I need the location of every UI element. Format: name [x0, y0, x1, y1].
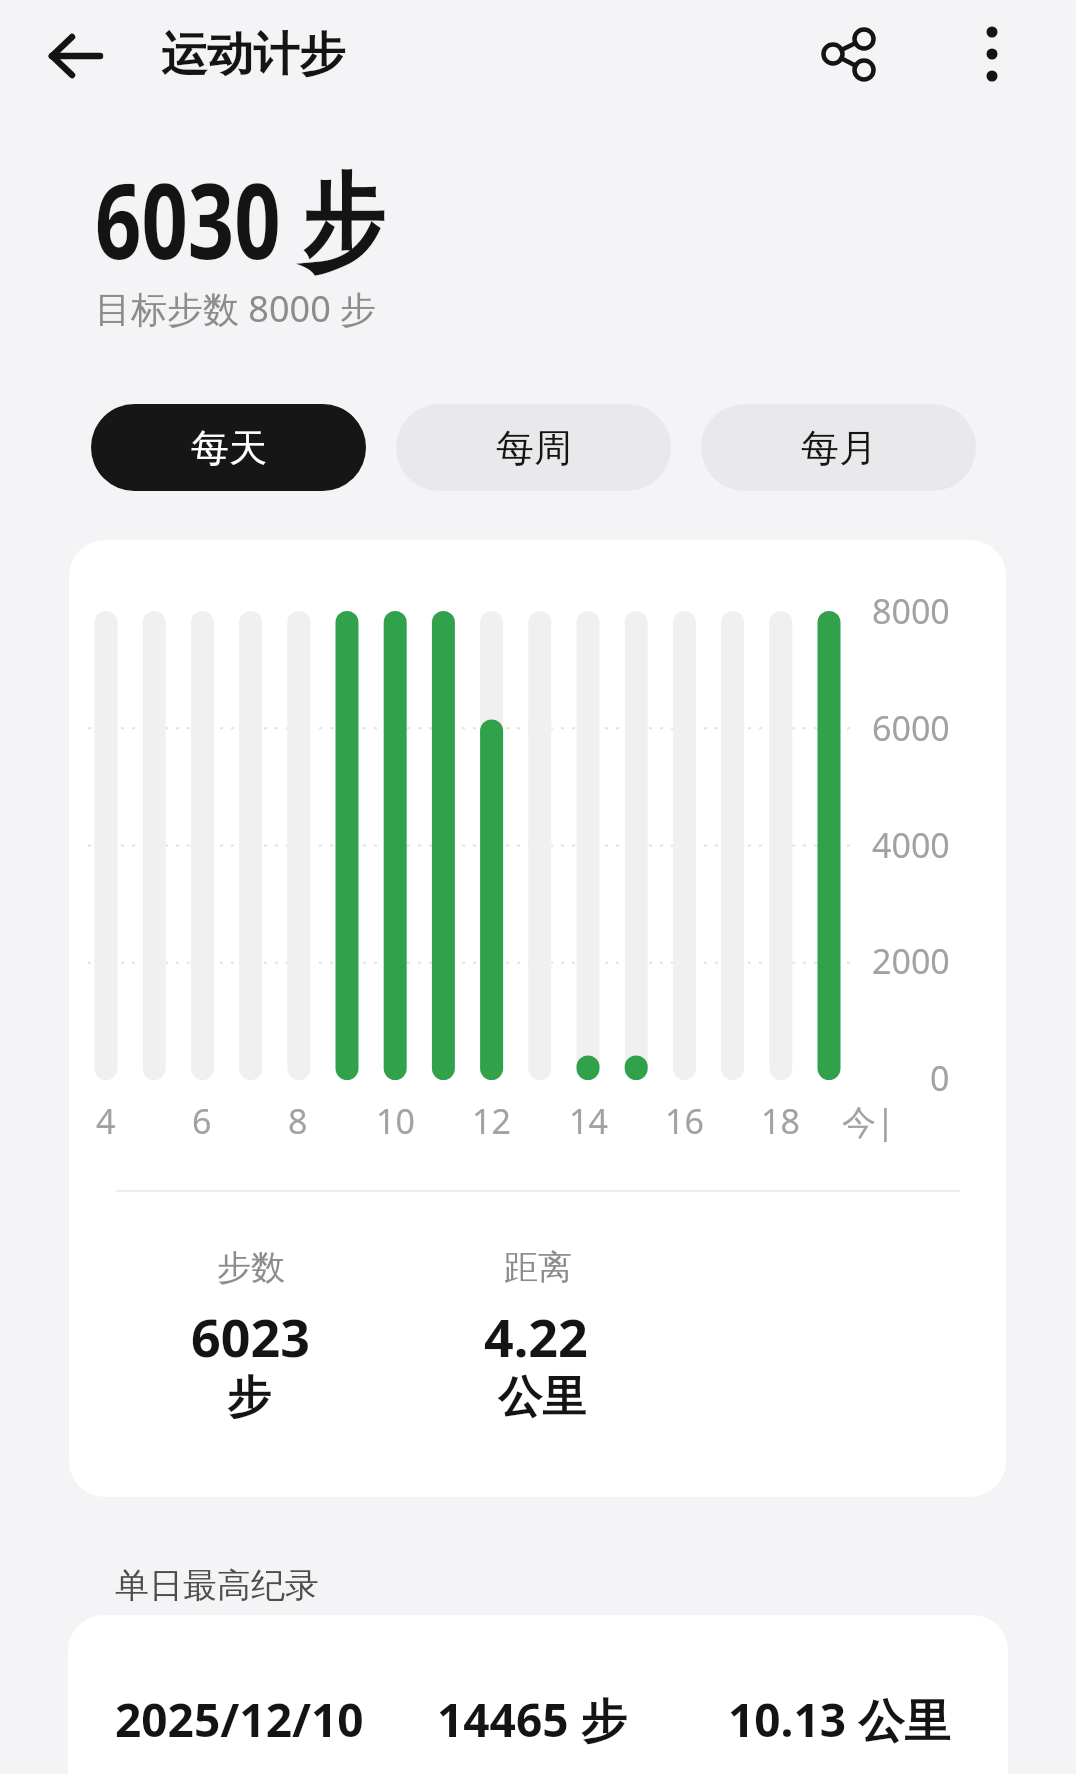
staticText: 12 — [472, 1098, 511, 1144]
staticText: 18 — [761, 1098, 800, 1144]
staticText: 6 — [192, 1098, 212, 1144]
button[interactable]: 每周 — [396, 404, 671, 491]
button[interactable] — [810, 20, 886, 88]
staticText: 4.22 — [484, 1301, 588, 1371]
button[interactable]: 2025/12/10 — [68, 1615, 1008, 1774]
staticText: 10.13 公里 — [728, 1688, 951, 1751]
staticText: 每周 — [496, 424, 572, 472]
staticText: 4000 — [872, 822, 950, 868]
staticText: 6023 — [191, 1301, 310, 1371]
staticText: 6000 — [872, 705, 950, 751]
staticText: 单日最高纪录 — [115, 1564, 319, 1607]
button[interactable]: 每天 — [91, 404, 366, 491]
staticText: 0 — [930, 1055, 950, 1101]
staticText: 8 — [288, 1098, 308, 1144]
staticText: 10 — [376, 1098, 415, 1144]
staticText: 运动计步 — [161, 26, 345, 84]
staticText: 4 — [96, 1098, 116, 1144]
staticText: 14465 步 — [437, 1688, 627, 1751]
staticText: 每天 — [191, 424, 267, 472]
staticText: 步数 — [217, 1246, 285, 1289]
staticText: 距离 — [504, 1246, 572, 1289]
staticText: 2000 — [872, 938, 950, 984]
staticText: 今| — [842, 1098, 895, 1144]
staticText: 公里 — [498, 1370, 586, 1425]
staticText: 16 — [665, 1098, 704, 1144]
staticText: 6030 步 — [95, 148, 383, 290]
button[interactable] — [36, 26, 116, 86]
button[interactable] — [962, 20, 1022, 88]
staticText: 目标步数 8000 步 — [95, 284, 377, 333]
staticText: 2025/12/10 — [115, 1688, 364, 1751]
staticText: 8000 — [872, 588, 950, 634]
staticText: 14 — [569, 1098, 608, 1144]
staticText: 每月 — [801, 424, 877, 472]
button[interactable]: 每月 — [701, 404, 976, 491]
staticText: 步 — [227, 1370, 271, 1425]
